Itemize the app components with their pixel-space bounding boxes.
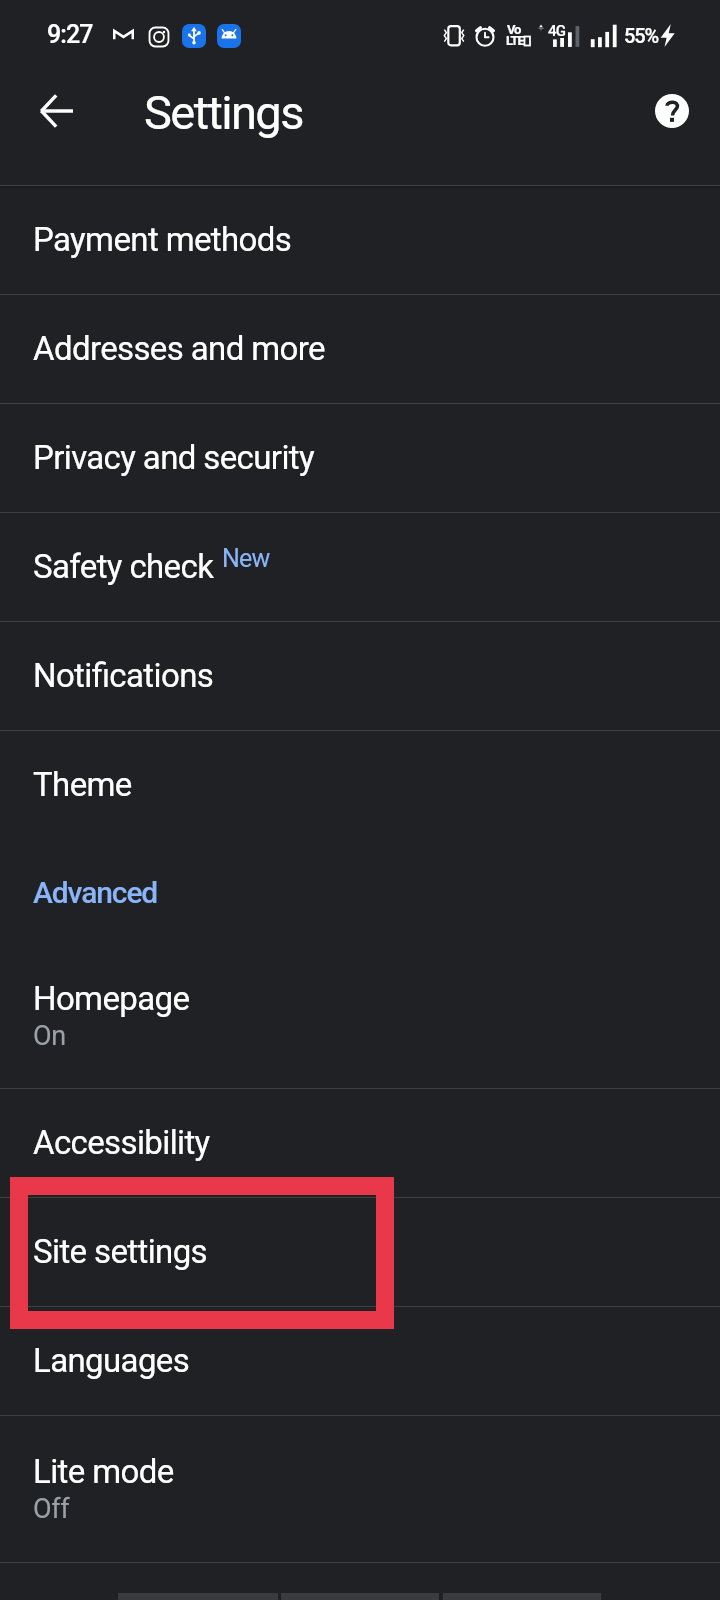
button[interactable]: Advanced [0, 841, 720, 944]
button[interactable]: Addresses and more [0, 294, 720, 403]
staticText: Notifications [33, 656, 214, 695]
button[interactable]: Lite mode [0, 1415, 720, 1562]
staticText: New [222, 544, 270, 573]
button[interactable]: Privacy and security [0, 403, 720, 512]
staticText: Advanced [33, 875, 158, 910]
staticText: Privacy and security [33, 438, 314, 477]
staticText: 55% [624, 24, 659, 47]
button[interactable]: Payment methods [0, 185, 720, 294]
button[interactable]: Back [24, 79, 88, 143]
button[interactable]: Help [640, 79, 704, 143]
button[interactable]: Accessibility [0, 1088, 720, 1197]
button[interactable]: Languages [0, 1306, 720, 1415]
staticText: Payment methods [33, 220, 292, 259]
staticText: Vo [507, 22, 521, 37]
staticText: Safety check [33, 547, 214, 586]
staticText: Addresses and more [33, 329, 325, 368]
staticText: 9:27 [47, 20, 93, 49]
staticText: Languages [33, 1341, 190, 1380]
button[interactable]: Theme [0, 730, 720, 839]
staticText: Theme [33, 765, 132, 804]
staticText: Lite mode [33, 1452, 174, 1491]
button[interactable]: Safety check [0, 512, 720, 621]
staticText: 4G [548, 22, 565, 40]
button[interactable]: Notifications [0, 621, 720, 730]
button[interactable]: Homepage [0, 942, 720, 1089]
staticText: On [33, 1020, 66, 1052]
staticText: Accessibility [33, 1123, 210, 1162]
staticText: Settings [144, 85, 303, 140]
staticText: LTE [506, 33, 524, 48]
button[interactable]: Site settings [0, 1197, 720, 1306]
staticText: Site settings [33, 1232, 207, 1271]
staticText: Homepage [33, 979, 190, 1018]
staticText: Off [33, 1493, 70, 1525]
